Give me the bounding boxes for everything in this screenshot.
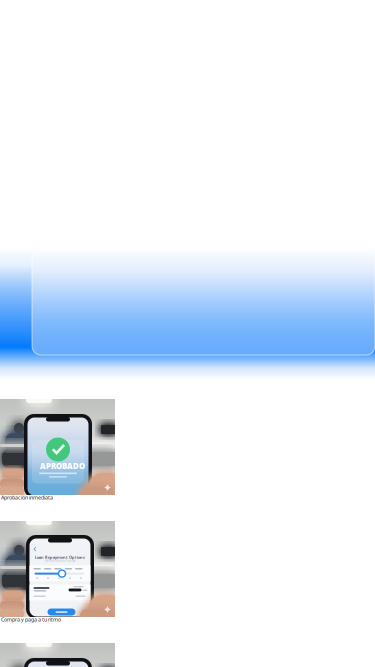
staticText: Referencia tus Cuotas [45, 559, 75, 562]
staticText: Loan Repayment Options [35, 554, 85, 560]
staticText: Aprobación inmediata [1, 494, 53, 501]
staticText: Compra y paga a tu ritmo [1, 616, 61, 623]
staticText: APROBADO [40, 460, 85, 471]
